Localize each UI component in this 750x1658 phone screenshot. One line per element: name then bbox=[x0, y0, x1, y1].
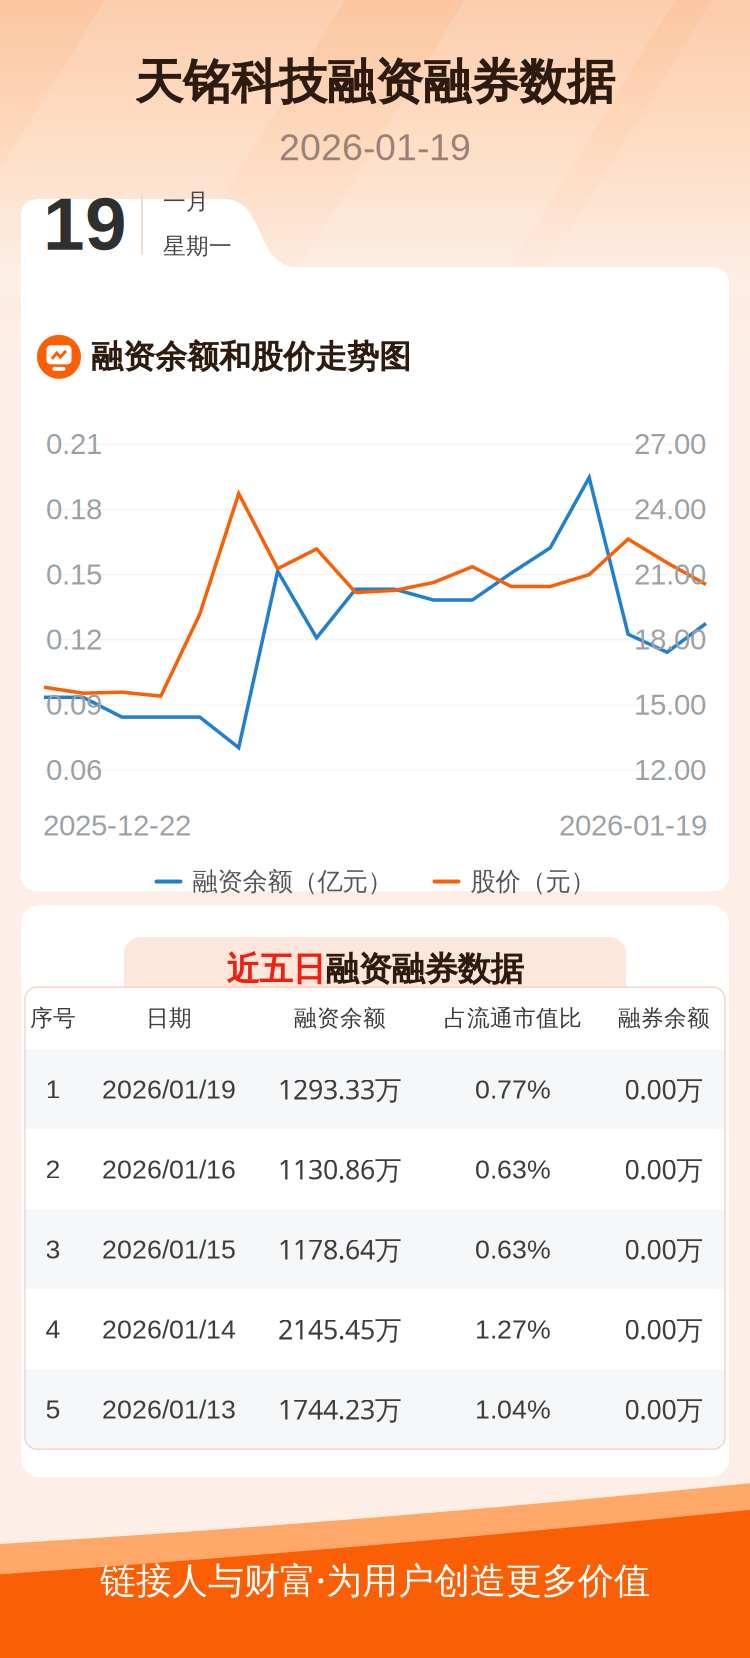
staticText: 日期 bbox=[146, 1004, 192, 1032]
staticText: 12.00 bbox=[634, 753, 706, 786]
staticText: 一月 bbox=[163, 187, 209, 216]
staticText: 1744.23万 bbox=[278, 1391, 402, 1427]
staticText: 序号 bbox=[30, 1004, 76, 1032]
staticText: 1.27% bbox=[475, 1314, 551, 1344]
staticText: 1.04% bbox=[475, 1394, 551, 1424]
staticText: 0.15 bbox=[46, 558, 102, 591]
staticText: 0.63% bbox=[475, 1234, 551, 1264]
staticText: 融资融券数据 bbox=[325, 948, 523, 990]
staticText: 4 bbox=[45, 1314, 60, 1344]
staticText: 1293.33万 bbox=[278, 1071, 402, 1107]
staticText: 星期一 bbox=[163, 232, 232, 260]
staticText: 15.00 bbox=[634, 688, 706, 721]
staticText: 24.00 bbox=[634, 493, 706, 525]
staticText: 0.00万 bbox=[624, 1391, 703, 1427]
staticText: 2026/01/14 bbox=[102, 1314, 236, 1344]
staticText: 融资余额和股价走势图 bbox=[91, 337, 411, 377]
staticText: 0.12 bbox=[46, 623, 102, 656]
staticText: 0.18 bbox=[46, 493, 102, 525]
staticText: 股价（元） bbox=[470, 866, 595, 897]
staticText: 0.00万 bbox=[624, 1071, 703, 1107]
staticText: 0.00万 bbox=[624, 1311, 703, 1347]
staticText: 占流通市值比 bbox=[444, 1004, 582, 1032]
staticText: 2145.45万 bbox=[278, 1311, 402, 1347]
staticText: 2026-01-19 bbox=[559, 809, 707, 842]
staticText: 2025-12-22 bbox=[43, 809, 191, 842]
staticText: 0.00万 bbox=[624, 1231, 703, 1267]
staticText: 融资余额 bbox=[294, 1004, 386, 1032]
staticText: 链接人与财富·为用户创造更多价值 bbox=[100, 1555, 650, 1604]
staticText: 1 bbox=[45, 1074, 60, 1104]
staticText: 2026-01-19 bbox=[279, 126, 471, 168]
staticText: 0.63% bbox=[475, 1154, 551, 1184]
staticText: 5 bbox=[45, 1394, 60, 1424]
staticText: 2026/01/15 bbox=[102, 1234, 236, 1264]
staticText: 近五日 bbox=[226, 948, 325, 990]
staticText: 2026/01/16 bbox=[102, 1154, 236, 1184]
staticText: 2026/01/19 bbox=[102, 1074, 236, 1104]
staticText: 19 bbox=[43, 182, 127, 265]
staticText: 21.00 bbox=[634, 558, 706, 591]
staticText: 0.21 bbox=[46, 427, 102, 460]
staticText: 融资余额（亿元） bbox=[192, 866, 392, 897]
staticText: 1178.64万 bbox=[278, 1231, 402, 1267]
staticText: 3 bbox=[45, 1234, 60, 1264]
staticText: 0.09 bbox=[46, 688, 102, 721]
staticText: 18.00 bbox=[634, 623, 706, 656]
staticText: 1130.86万 bbox=[278, 1151, 402, 1187]
staticText: 融券余额 bbox=[618, 1004, 710, 1032]
staticText: 0.00万 bbox=[624, 1151, 703, 1187]
staticText: 0.06 bbox=[46, 753, 102, 786]
staticText: 2026/01/13 bbox=[102, 1394, 236, 1424]
staticText: 0.77% bbox=[475, 1074, 551, 1104]
staticText: 2 bbox=[45, 1154, 60, 1184]
staticText: 27.00 bbox=[634, 427, 706, 460]
staticText: 天铭科技融资融券数据 bbox=[135, 52, 615, 112]
